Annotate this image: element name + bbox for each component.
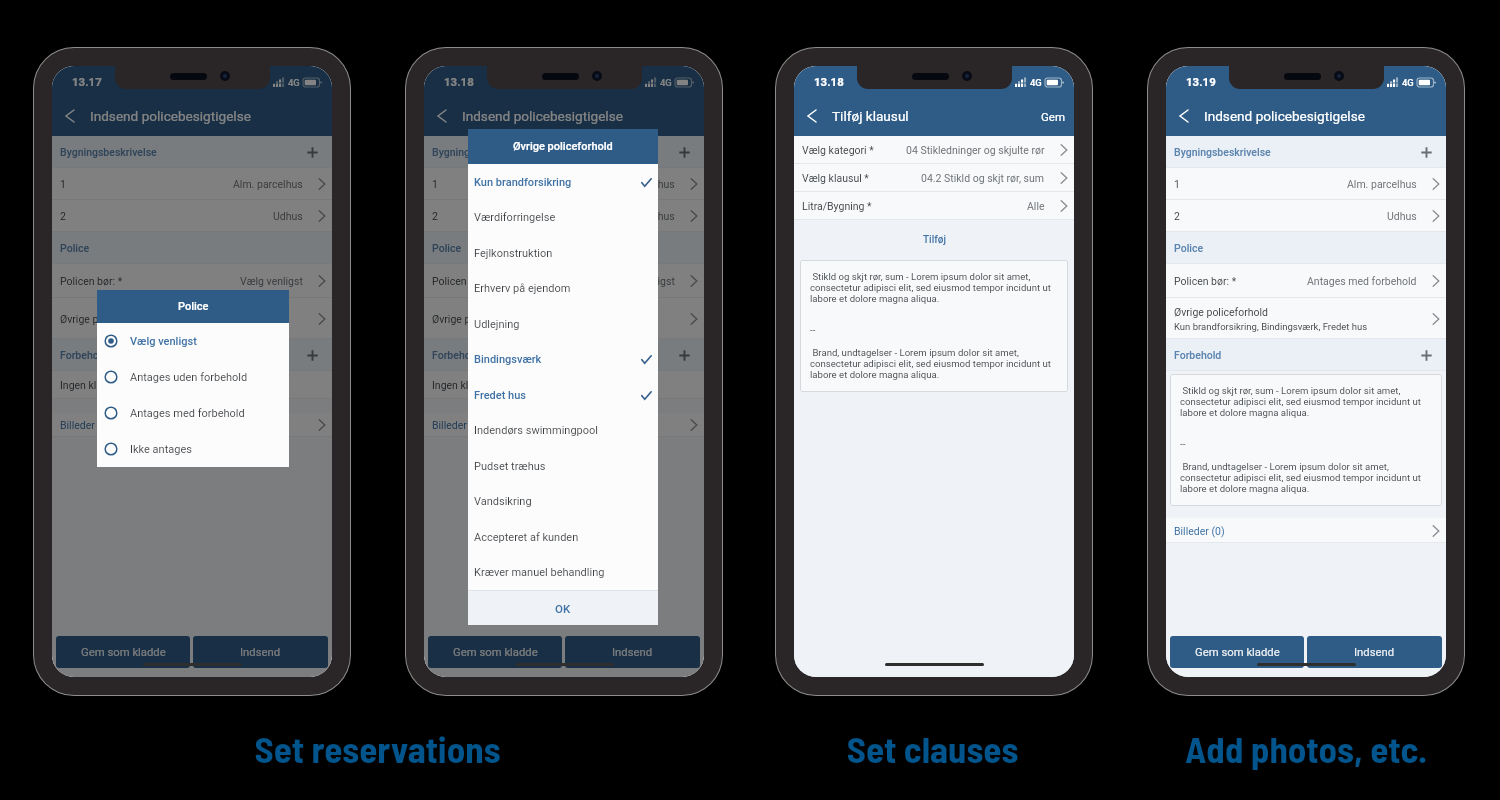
button[interactable]: Police xyxy=(52,232,332,264)
button[interactable]: Indsend xyxy=(1307,636,1442,668)
button[interactable]: Back xyxy=(431,105,453,127)
staticText: Billeder (0) xyxy=(432,419,483,431)
button[interactable]: 1 xyxy=(52,168,332,200)
button[interactable]: Øvrige policeforhold xyxy=(52,298,332,339)
staticText: Forbehold xyxy=(1174,349,1222,361)
button[interactable]: Indsend xyxy=(193,636,328,668)
button[interactable]: Litra/Bygning * xyxy=(794,192,1074,220)
button[interactable]: Ingen klausuler tilføjet xyxy=(52,371,332,399)
button[interactable]: Antages uden forbehold xyxy=(97,359,289,395)
button[interactable]: Ikke antages xyxy=(97,431,289,467)
button[interactable]: Øvrige policeforhold xyxy=(1166,298,1446,339)
button[interactable]: Add Forbehold xyxy=(1417,346,1435,364)
staticText: Udlejning xyxy=(474,318,520,331)
button[interactable]: Add Bygningsbeskrivelse xyxy=(675,143,693,161)
button[interactable]: Policen bør: * xyxy=(52,264,332,298)
staticText: Ingen klausuler tilføjet xyxy=(60,379,164,391)
button[interactable]: Bindingsværk xyxy=(468,342,658,377)
button[interactable]: Back xyxy=(801,105,823,127)
staticText: 4G xyxy=(1030,77,1042,88)
button[interactable]: Add Bygningsbeskrivelse xyxy=(303,143,321,161)
button[interactable]: Vandsikring xyxy=(468,484,658,519)
staticText: Billeder (0) xyxy=(60,419,111,431)
button[interactable]: Back xyxy=(1173,105,1195,127)
staticText: Indsend policebesigtigelse xyxy=(90,108,251,124)
staticText: 1 xyxy=(1174,178,1180,190)
staticText: OK xyxy=(555,602,571,615)
staticText: Policen bør: * xyxy=(60,275,123,287)
staticText: 04.2 Stikld og skjt rør, sum xyxy=(921,172,1045,184)
staticText: Police xyxy=(1174,242,1204,254)
staticText: Indsend xyxy=(240,646,281,659)
button[interactable]: Forbehold xyxy=(424,339,704,371)
staticText: Stikld og skjt rør, sum - Lorem ipsum do… xyxy=(810,271,1061,304)
staticText: Tilføj klausul xyxy=(832,108,909,124)
button[interactable]: Tilføj xyxy=(794,220,1074,260)
button[interactable]: Vælg kategori * xyxy=(794,136,1074,164)
button[interactable]: Kræver manuel behandling xyxy=(468,555,658,590)
button[interactable]: Policen bør: * xyxy=(424,264,704,298)
staticText: 2 xyxy=(1174,210,1180,222)
button[interactable]: Add Forbehold xyxy=(303,346,321,364)
staticText: Indendørs swimmingpool xyxy=(474,424,598,437)
staticText: 13.18 xyxy=(814,75,844,88)
staticText: Øvrige policeforhold xyxy=(1174,306,1268,318)
button[interactable]: Police xyxy=(1166,232,1446,264)
staticText: -- xyxy=(810,324,816,335)
staticText: 1 xyxy=(432,178,438,190)
button[interactable]: 2 xyxy=(424,200,704,232)
staticText: Øvrige policeforhold xyxy=(60,313,154,325)
button[interactable]: Antages med forbehold xyxy=(97,395,289,431)
button[interactable]: Policen bør: * xyxy=(1166,264,1446,298)
staticText: 2 xyxy=(432,210,438,222)
staticText: Indsend policebesigtigelse xyxy=(462,108,623,124)
button[interactable]: Kun brandforsikring xyxy=(468,164,658,200)
button[interactable]: Gem som kladde xyxy=(1170,636,1304,668)
button[interactable]: Bygningsbeskrivelse xyxy=(52,136,332,168)
staticText: Kun brandforsikring, Bindingsværk, Frede… xyxy=(1174,321,1368,332)
button[interactable]: Fejlkonstruktion xyxy=(468,235,658,271)
staticText: 13.18 xyxy=(444,75,474,88)
staticText: Gem som kladde xyxy=(453,646,538,659)
staticText: Brand, undtagelser - Lorem ipsum dolor s… xyxy=(1180,461,1435,494)
button[interactable]: Fredet hus xyxy=(468,377,658,413)
button[interactable]: Billeder (0) xyxy=(1166,518,1446,543)
button[interactable]: 1 xyxy=(1166,168,1446,200)
staticText: Øvrige policeforhold xyxy=(513,140,613,153)
button[interactable]: Ingen klausuler tilføjet xyxy=(424,371,704,399)
button[interactable]: Bygningsbeskrivelse xyxy=(424,136,704,168)
button[interactable]: Billeder (0) xyxy=(52,413,332,437)
button[interactable]: Gem xyxy=(1033,104,1074,129)
button[interactable]: Accepteret af kunden xyxy=(468,519,658,555)
button[interactable]: Udlejning xyxy=(468,306,658,342)
button[interactable]: Vælg venligst xyxy=(97,323,289,359)
button[interactable]: Forbehold xyxy=(1166,339,1446,371)
button[interactable]: Erhverv på ejendom xyxy=(468,271,658,306)
button[interactable]: Indsend xyxy=(565,636,700,668)
button[interactable]: Vælg klausul * xyxy=(794,164,1074,192)
button[interactable]: Police xyxy=(424,232,704,264)
button[interactable]: OK xyxy=(468,591,658,625)
button[interactable]: Back xyxy=(59,105,81,127)
staticText: Police xyxy=(178,300,209,313)
staticText: Indsend policebesigtigelse xyxy=(1204,108,1365,124)
staticText: Bindingsværk xyxy=(474,353,542,366)
staticText: Kræver manuel behandling xyxy=(474,566,605,579)
button[interactable]: 2 xyxy=(52,200,332,232)
button[interactable]: Bygningsbeskrivelse xyxy=(1166,136,1446,168)
staticText: Gem som kladde xyxy=(1195,646,1280,659)
button[interactable]: Gem som kladde xyxy=(56,636,190,668)
button[interactable]: Add Forbehold xyxy=(675,346,693,364)
button[interactable]: Billeder (0) xyxy=(424,413,704,437)
button[interactable]: 2 xyxy=(1166,200,1446,232)
button[interactable]: 1 xyxy=(424,168,704,200)
button[interactable]: Værdiforringelse xyxy=(468,200,658,235)
button[interactable]: Pudset træhus xyxy=(468,448,658,484)
staticText: Set reservations xyxy=(240,726,515,770)
button[interactable]: Forbehold xyxy=(52,339,332,371)
button[interactable]: Add Bygningsbeskrivelse xyxy=(1417,143,1435,161)
button[interactable]: Gem som kladde xyxy=(428,636,562,668)
button[interactable]: Indendørs swimmingpool xyxy=(468,413,658,448)
staticText: Øvrige policeforhold xyxy=(432,313,526,325)
button[interactable]: Øvrige policeforhold xyxy=(424,298,704,339)
